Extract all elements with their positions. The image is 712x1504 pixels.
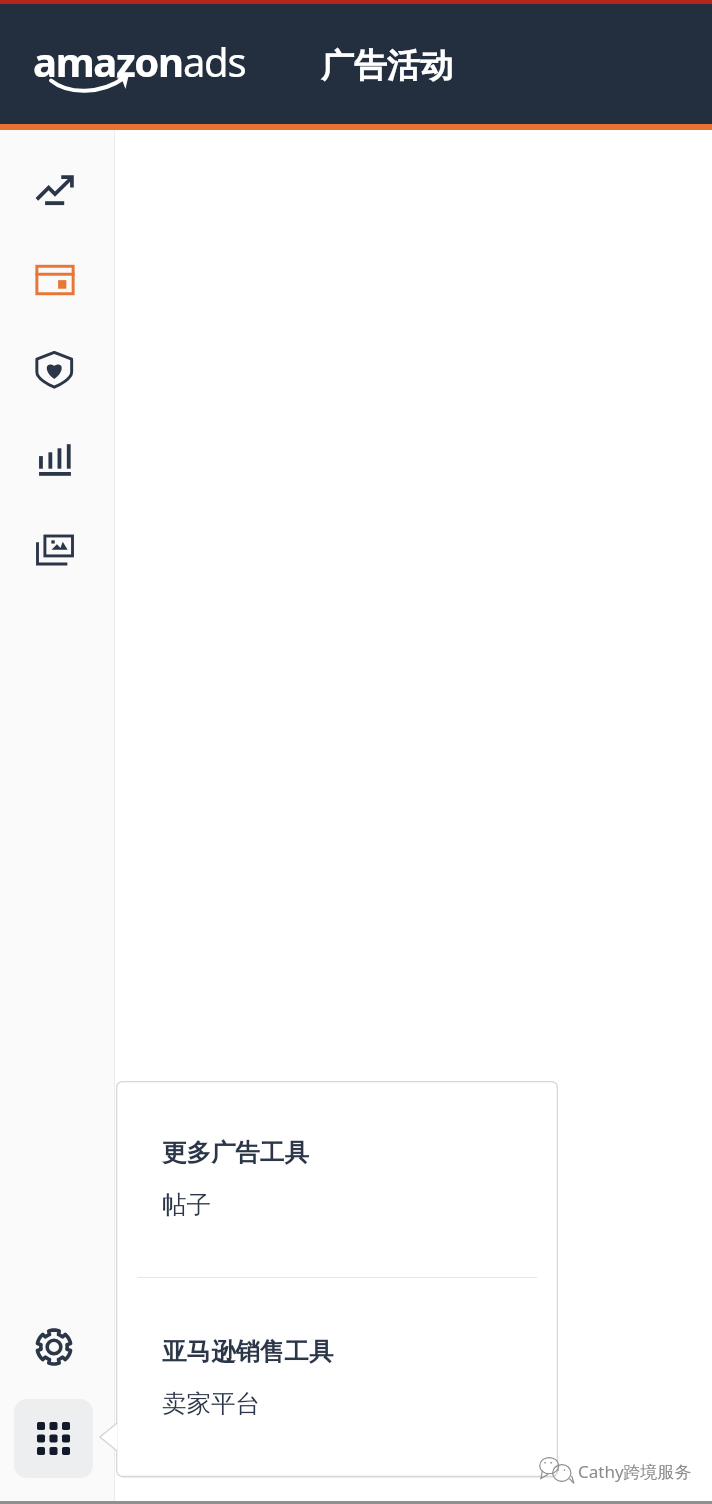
- button[interactable]: Brand protection: [20, 335, 90, 405]
- button[interactable]: Campaigns: [20, 245, 90, 315]
- button[interactable]: Trends: [20, 155, 90, 225]
- button[interactable]: 卖家平台: [162, 1388, 260, 1419]
- button[interactable]: Settings: [19, 1312, 89, 1382]
- staticText: 卖家平台: [162, 1388, 260, 1419]
- staticText: 广告活动: [321, 45, 453, 87]
- button[interactable]: 帖子: [162, 1189, 211, 1220]
- button[interactable]: Creative assets: [20, 515, 90, 585]
- button[interactable]: Reports: [20, 425, 90, 495]
- staticText: ads: [183, 34, 246, 88]
- staticText: 更多广告工具: [162, 1137, 309, 1168]
- staticText: 帖子: [162, 1189, 211, 1220]
- staticText: amazon: [33, 34, 183, 88]
- staticText: Cathy跨境服务: [578, 1460, 692, 1483]
- staticText: 亚马逊销售工具: [162, 1336, 334, 1367]
- button[interactable]: All apps: [14, 1399, 93, 1478]
